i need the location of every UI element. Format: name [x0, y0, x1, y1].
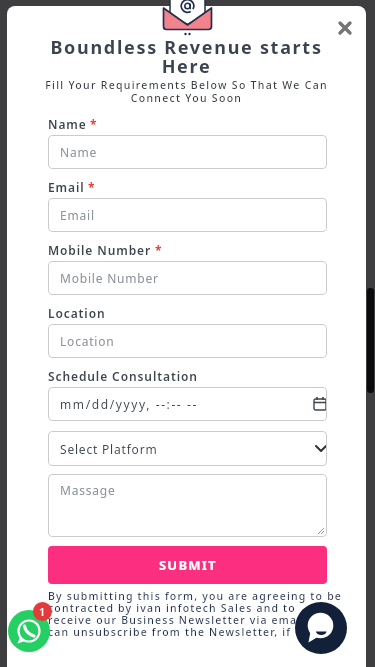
staticText: Name [60, 144, 98, 160]
staticText: Location [48, 305, 106, 321]
button[interactable] [336, 19, 354, 37]
staticText: SUBMIT [159, 556, 217, 574]
staticText: Fill Your Requirements Below So That We … [7, 78, 366, 105]
staticText: Mobile Number [48, 242, 152, 258]
button[interactable] [295, 602, 347, 654]
button[interactable]: Email [48, 198, 327, 232]
staticText: * [85, 179, 95, 195]
button[interactable]: Location [48, 324, 327, 358]
button[interactable]: Mobile Number [48, 261, 327, 295]
staticText: Email [60, 207, 95, 223]
button[interactable]: Select Platform [48, 431, 327, 466]
button[interactable]: SUBMIT [48, 546, 327, 584]
staticText: By submitting this form, you are agreein… [48, 589, 358, 639]
staticText: Massage [60, 482, 116, 498]
button[interactable]: mm/dd/yyyy, --:-- -- [48, 387, 327, 421]
staticText: * [87, 116, 97, 132]
staticText: Mobile Number [60, 270, 159, 286]
button[interactable]: Name [48, 135, 327, 169]
staticText: Select Platform [60, 441, 158, 457]
staticText: mm/dd/yyyy, --:-- -- [60, 396, 198, 412]
button[interactable] [8, 610, 50, 652]
staticText: Boundless Revenue starts Here [7, 35, 366, 78]
staticText: Name [48, 116, 87, 132]
staticText: 1 [39, 604, 46, 619]
staticText: * [152, 242, 162, 258]
staticText: Email [48, 179, 85, 195]
button[interactable]: Massage [48, 474, 327, 537]
staticText: Location [60, 333, 115, 349]
staticText: Schedule Consultation [48, 368, 198, 384]
